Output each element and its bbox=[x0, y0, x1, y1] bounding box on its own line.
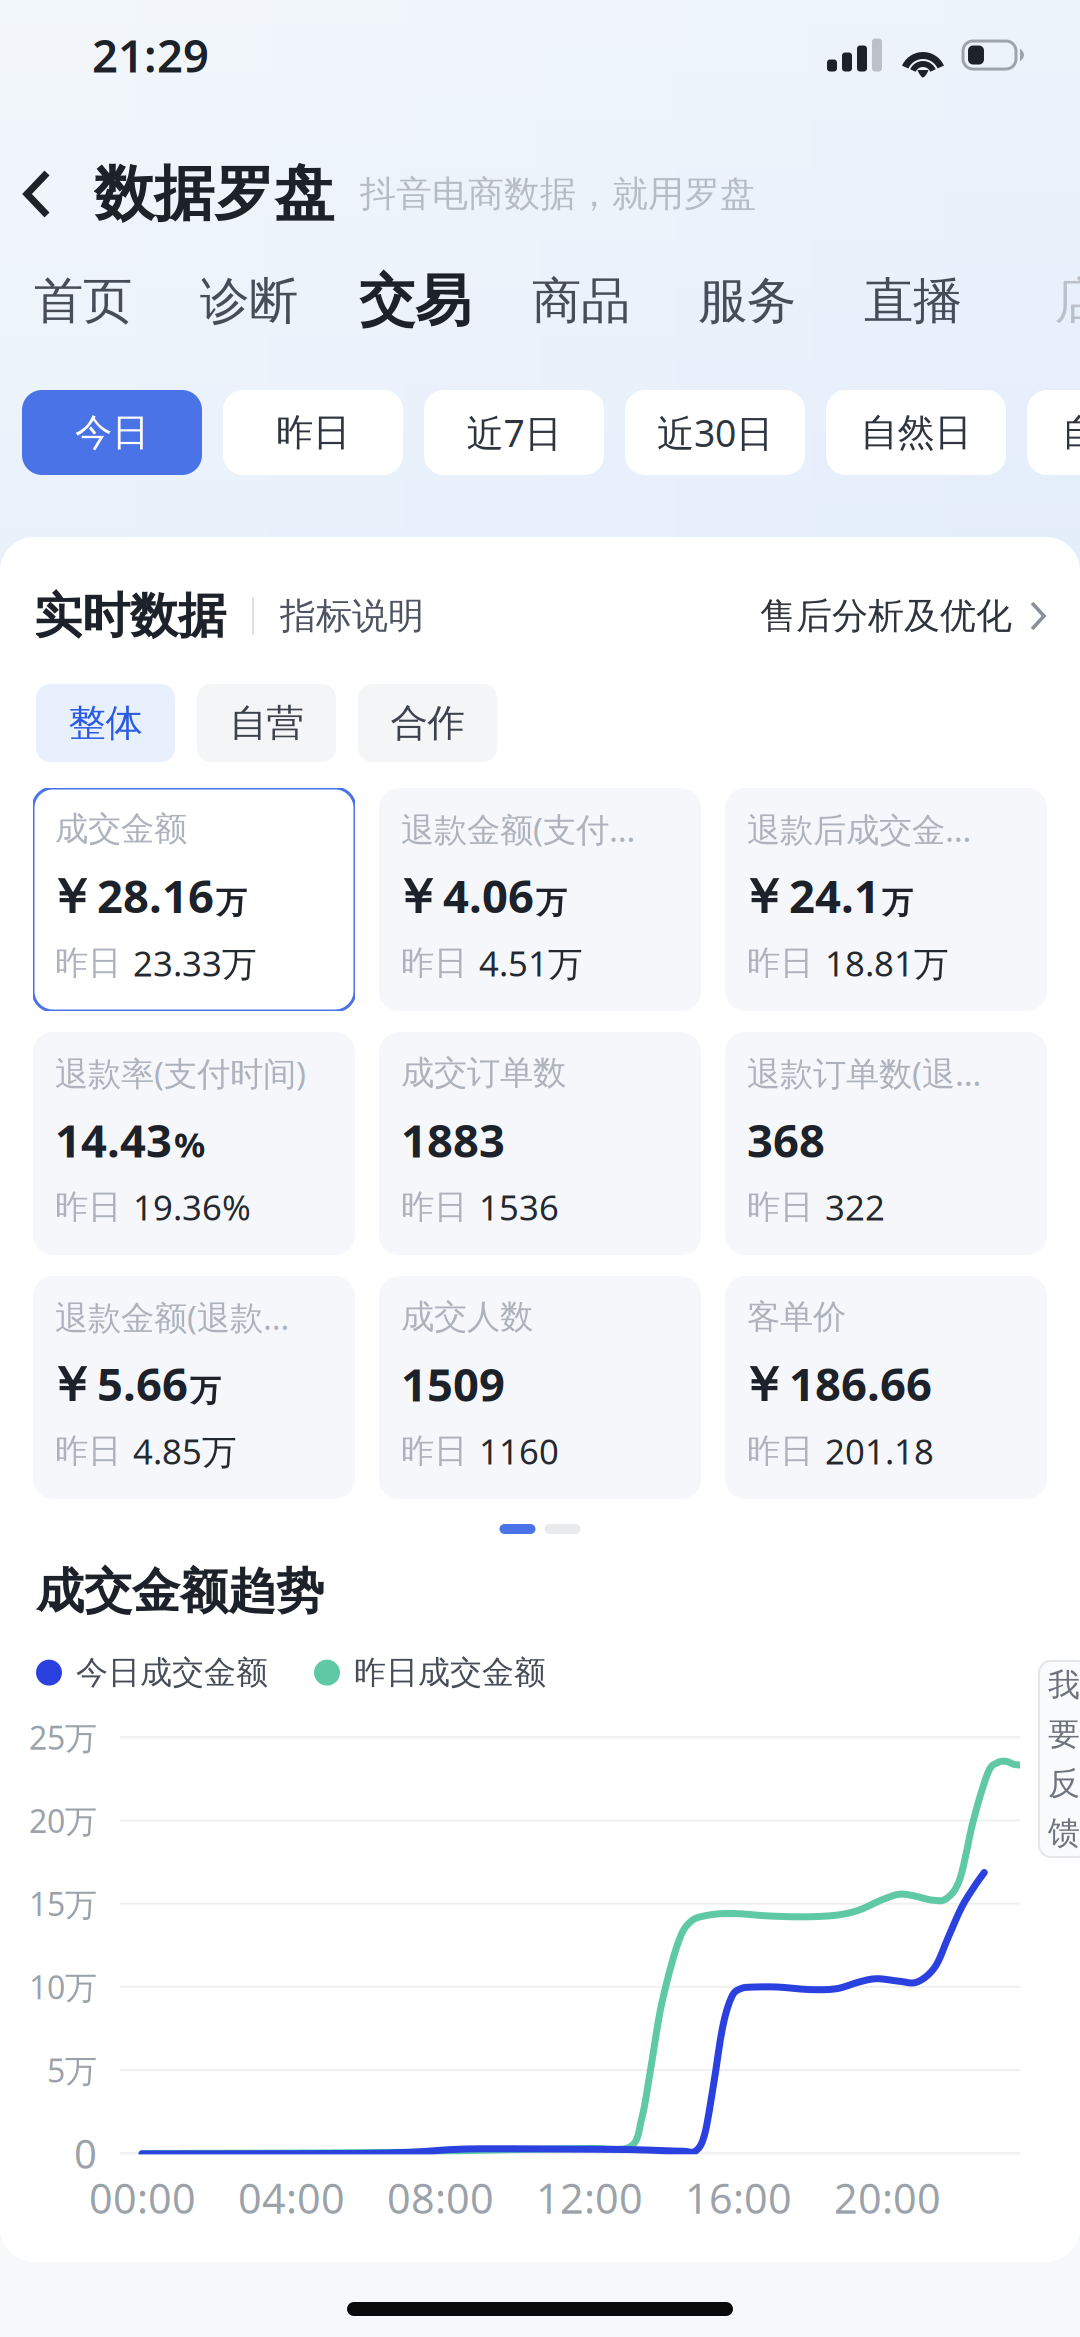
staticText: ￥ bbox=[393, 868, 441, 927]
button[interactable]: 店 bbox=[996, 258, 1080, 344]
button[interactable]: 售后分析及优化 bbox=[760, 594, 1046, 638]
staticText: 首页 bbox=[34, 271, 132, 331]
button[interactable]: 商品 bbox=[498, 258, 664, 344]
staticText: 近7日 bbox=[466, 408, 561, 457]
staticText: 04:00 bbox=[238, 2170, 345, 2225]
staticText: 25万 bbox=[29, 1716, 97, 1758]
button[interactable]: 直播 bbox=[830, 258, 996, 344]
staticText: 退款订单数(退… bbox=[747, 1051, 981, 1095]
staticText: 万 bbox=[216, 884, 247, 922]
staticText: 馈 bbox=[1048, 1813, 1080, 1853]
staticText: % bbox=[174, 1121, 205, 1167]
staticText: 实时数据 bbox=[34, 586, 226, 645]
staticText: 12:00 bbox=[536, 2170, 643, 2225]
staticText: 昨日 bbox=[55, 1430, 121, 1471]
staticText: 18.81万 bbox=[825, 940, 949, 986]
staticText: 商品 bbox=[532, 271, 630, 331]
button[interactable]: 诊断 bbox=[166, 258, 332, 344]
button[interactable]: 服务 bbox=[664, 258, 830, 344]
staticText: 退款金额(支付… bbox=[401, 807, 635, 851]
button[interactable]: 客单价 bbox=[725, 1276, 1047, 1499]
staticText: 昨日 bbox=[276, 410, 350, 455]
button[interactable]: 退款率(支付时间) bbox=[33, 1032, 355, 1255]
staticText: 00:00 bbox=[89, 2170, 196, 2225]
staticText: 自然日 bbox=[860, 410, 971, 455]
button[interactable]: 自营 bbox=[197, 684, 336, 762]
staticText: 服务 bbox=[698, 271, 796, 331]
staticText: 今日成交金额 bbox=[76, 1653, 268, 1692]
staticText: 自营 bbox=[229, 700, 303, 746]
staticText: 昨日 bbox=[55, 1186, 121, 1227]
staticText: 1536 bbox=[479, 1184, 559, 1230]
staticText: 成交金额 bbox=[55, 808, 187, 849]
staticText: 昨日 bbox=[747, 1186, 813, 1227]
button[interactable]: 首页 bbox=[0, 258, 166, 344]
staticText: 成交人数 bbox=[401, 1296, 533, 1337]
button[interactable]: 指标说明 bbox=[280, 594, 424, 638]
staticText: 08:00 bbox=[387, 2170, 494, 2225]
button[interactable]: 自然周 bbox=[1027, 390, 1080, 475]
button[interactable]: 退款订单数(退… bbox=[725, 1032, 1047, 1255]
button[interactable]: 退款后成交金… bbox=[725, 788, 1047, 1011]
staticText: 16:00 bbox=[685, 2170, 792, 2225]
staticText: 368 bbox=[747, 1110, 825, 1170]
staticText: 直播 bbox=[864, 271, 962, 331]
staticText: 23.33万 bbox=[133, 940, 257, 986]
staticText: 万 bbox=[190, 1372, 221, 1410]
staticText: 昨日 bbox=[747, 1430, 813, 1471]
staticText: 退款率(支付时间) bbox=[55, 1051, 306, 1095]
staticText: 186.66 bbox=[789, 1353, 932, 1414]
staticText: 自然周 bbox=[1061, 410, 1080, 455]
staticText: 退款后成交金… bbox=[747, 807, 971, 851]
staticText: ￥ bbox=[47, 868, 95, 927]
button[interactable]: 退款金额(退款… bbox=[33, 1276, 355, 1499]
staticText: 近30日 bbox=[657, 408, 773, 457]
staticText: 万 bbox=[882, 884, 913, 922]
staticText: 15万 bbox=[29, 1882, 97, 1925]
staticText: 1509 bbox=[401, 1354, 505, 1414]
button[interactable]: 合作 bbox=[358, 684, 497, 762]
staticText: 昨日 bbox=[747, 942, 813, 983]
button[interactable]: 成交金额 bbox=[33, 788, 355, 1011]
staticText: 退款金额(退款… bbox=[55, 1295, 289, 1339]
button[interactable]: 退款金额(支付… bbox=[379, 788, 701, 1011]
button[interactable]: 成交订单数 bbox=[379, 1032, 701, 1255]
button[interactable]: 成交人数 bbox=[379, 1276, 701, 1499]
staticText: ￥ bbox=[47, 1356, 95, 1415]
staticText: 数据罗盘 bbox=[94, 157, 334, 231]
staticText: 24.1 bbox=[789, 865, 880, 926]
staticText: 0 bbox=[74, 2127, 97, 2180]
staticText: 昨日成交金额 bbox=[354, 1653, 546, 1692]
staticText: 10万 bbox=[29, 1966, 97, 2008]
staticText: 昨日 bbox=[401, 1186, 467, 1227]
staticText: 5.66 bbox=[97, 1353, 188, 1414]
button[interactable]: 整体 bbox=[36, 684, 175, 762]
staticText: ￥ bbox=[739, 1356, 787, 1415]
staticText: 指标说明 bbox=[280, 594, 424, 638]
staticText: 4.85万 bbox=[133, 1428, 237, 1474]
staticText: 交易 bbox=[359, 267, 471, 335]
staticText: 今日 bbox=[75, 410, 149, 455]
button[interactable]: 近30日 bbox=[625, 390, 805, 475]
button[interactable]: 自然日 bbox=[826, 390, 1006, 475]
staticText: 昨日 bbox=[401, 942, 467, 983]
staticText: 店 bbox=[1054, 271, 1080, 331]
button[interactable]: 我要反馈 bbox=[1039, 1661, 1080, 1857]
button[interactable]: 今日 bbox=[22, 390, 202, 475]
staticText: ￥ bbox=[739, 868, 787, 927]
staticText: 反 bbox=[1048, 1764, 1080, 1803]
staticText: 要 bbox=[1048, 1715, 1080, 1754]
button[interactable]: 交易 bbox=[332, 258, 498, 344]
staticText: 201.18 bbox=[825, 1428, 934, 1474]
button[interactable]: 昨日 bbox=[223, 390, 403, 475]
staticText: 1883 bbox=[401, 1110, 505, 1170]
staticText: 昨日 bbox=[401, 1430, 467, 1471]
staticText: 我 bbox=[1048, 1665, 1080, 1705]
staticText: 合作 bbox=[390, 700, 464, 746]
staticText: 19.36% bbox=[133, 1184, 251, 1230]
staticText: 抖音电商数据，就用罗盘 bbox=[360, 172, 756, 216]
button[interactable]: 返回 bbox=[0, 158, 66, 230]
staticText: 28.16 bbox=[97, 865, 214, 926]
button[interactable]: 近7日 bbox=[424, 390, 604, 475]
staticText: 诊断 bbox=[200, 271, 298, 331]
